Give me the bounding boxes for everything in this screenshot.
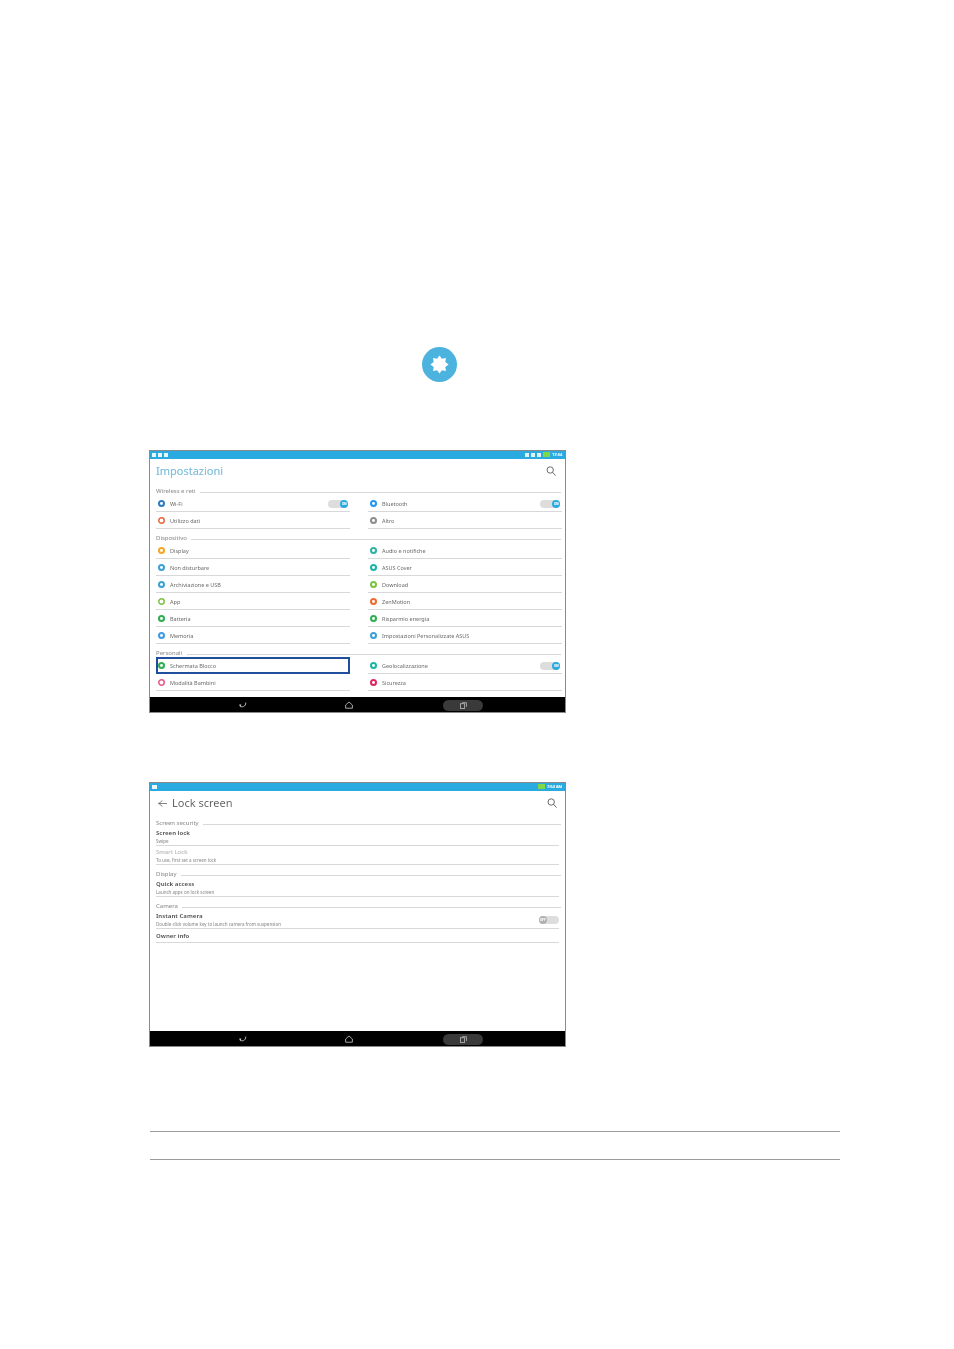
staticText: Camera (156, 902, 178, 910)
staticText: Impostazioni Personalizzate ASUS (382, 632, 470, 639)
button[interactable]: Non disturbare (156, 559, 350, 576)
button[interactable]: Search (543, 463, 559, 479)
button[interactable]: Geolocalizzazione (368, 657, 562, 674)
staticText: Screen lock (156, 829, 190, 837)
button[interactable]: Impostazioni Personalizzate ASUS (368, 627, 562, 644)
staticText: Double click volume key to launch camera… (156, 921, 282, 927)
staticText: Geolocalizzazione (382, 662, 428, 669)
staticText: Lock screen (172, 795, 233, 810)
button[interactable]: App (156, 593, 350, 610)
staticText: ON (554, 502, 559, 506)
staticText: Audio e notifiche (382, 547, 426, 554)
staticText: Display (170, 547, 189, 554)
button[interactable]: Toggle (540, 500, 560, 508)
staticText: Schermata Blocco (170, 662, 217, 669)
button[interactable]: Quick access (149, 878, 566, 897)
staticText: Impostazioni (156, 463, 224, 478)
staticText: Wi-Fi (170, 500, 183, 507)
button[interactable]: Back (155, 796, 169, 810)
staticText: 7:54 AM (547, 784, 563, 789)
staticText: Sicurezza (382, 679, 406, 686)
staticText: App (170, 598, 181, 605)
button[interactable]: Recents (443, 700, 483, 711)
button[interactable]: Instant Camera (149, 910, 566, 929)
staticText: Instant Camera (156, 912, 203, 920)
button[interactable]: Back (232, 697, 254, 713)
button[interactable]: Bluetooth (368, 495, 562, 512)
button[interactable]: Download (368, 576, 562, 593)
button[interactable]: Screen lock (149, 827, 566, 846)
button[interactable]: Schermata Blocco (156, 657, 350, 674)
button[interactable]: Altro (368, 512, 562, 529)
button[interactable]: Risparmio energia (368, 610, 562, 627)
staticText: OFF (540, 918, 546, 922)
staticText: Dispositivo (156, 534, 187, 542)
staticText: Smart Lock (156, 848, 188, 856)
button[interactable]: ASUS Cover (368, 559, 562, 576)
button[interactable]: Memoria (156, 627, 350, 644)
staticText: Launch apps on lock screen (156, 889, 215, 895)
button[interactable]: Home (338, 1031, 360, 1047)
button[interactable]: Settings (422, 347, 457, 382)
staticText: ON (342, 502, 347, 506)
button[interactable]: Home (338, 697, 360, 713)
staticText: Quick access (156, 880, 195, 888)
staticText: Batteria (170, 615, 191, 622)
button[interactable]: Owner info (149, 929, 566, 943)
staticText: Utilizzo dati (170, 517, 201, 524)
staticText: Swipe (156, 838, 169, 844)
staticText: 17:54 (552, 452, 563, 457)
button[interactable]: Toggle (540, 662, 560, 670)
staticText: Bluetooth (382, 500, 408, 507)
staticText: Memoria (170, 632, 194, 639)
staticText: Archiviazione e USB (170, 581, 221, 588)
button[interactable]: Batteria (156, 610, 350, 627)
staticText: To use, first set a screen lock (156, 857, 217, 863)
button[interactable]: Search (544, 795, 560, 811)
button[interactable]: Archiviazione e USB (156, 576, 350, 593)
button[interactable]: Wi-Fi (156, 495, 350, 512)
button[interactable]: Back (232, 1031, 254, 1047)
staticText: Personali (156, 649, 183, 657)
button[interactable]: Modalità Bambini (156, 674, 350, 691)
staticText: Non disturbare (170, 564, 210, 571)
button[interactable]: Toggle (539, 916, 559, 924)
button[interactable]: Audio e notifiche (368, 542, 562, 559)
staticText: Download (382, 581, 409, 588)
button[interactable]: Toggle (328, 500, 348, 508)
button[interactable]: Sicurezza (368, 674, 562, 691)
staticText: ASUS Cover (382, 564, 412, 571)
staticText: Risparmio energia (382, 615, 430, 622)
staticText: Wireless e reti (156, 487, 196, 495)
staticText: ZenMotion (382, 598, 411, 605)
staticText: Screen security (156, 819, 199, 827)
staticText: ON (554, 664, 559, 668)
button[interactable]: Utilizzo dati (156, 512, 350, 529)
button[interactable]: Recents (443, 1034, 483, 1045)
button[interactable]: Display (156, 542, 350, 559)
staticText: Owner info (156, 932, 190, 940)
button[interactable]: ZenMotion (368, 593, 562, 610)
staticText: Modalità Bambini (170, 679, 216, 686)
button[interactable]: Smart Lock (149, 846, 566, 865)
staticText: Altro (382, 517, 395, 524)
staticText: Display (156, 870, 177, 878)
